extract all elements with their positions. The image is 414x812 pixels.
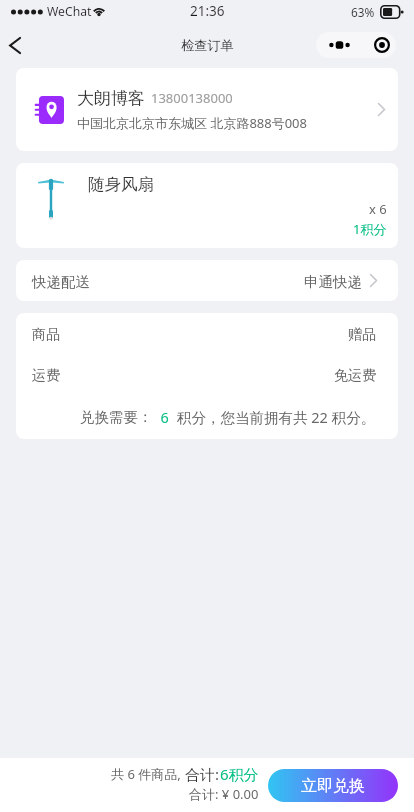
staticText: 兑换需要：: [80, 408, 153, 426]
button[interactable]: Back: [0, 25, 30, 65]
staticText: 快递配送: [32, 273, 90, 291]
staticText: 21:36: [190, 2, 225, 20]
staticText: 运费: [32, 367, 60, 385]
staticText: 商品: [32, 326, 60, 344]
staticText: 中国北京北京市东城区 北京路888号008: [77, 114, 307, 132]
staticText: 6积分: [220, 764, 259, 784]
staticText: 共 6 件商品,: [111, 765, 185, 783]
button[interactable]: 随身风扇: [16, 163, 398, 248]
staticText: 大朗博客: [77, 88, 145, 109]
button[interactable]: 快递配送: [16, 260, 398, 301]
staticText: 检查订单: [181, 37, 234, 54]
staticText: 申通快递: [304, 273, 362, 291]
staticText: 随身风扇: [88, 174, 154, 195]
staticText: 积分，您当前拥有共 22 积分。: [177, 407, 376, 427]
staticText: 6: [153, 407, 177, 427]
staticText: 1积分: [353, 220, 387, 238]
staticText: x 6: [369, 200, 387, 218]
staticText: 免运费: [334, 367, 376, 385]
staticText: 63%: [351, 4, 375, 20]
staticText: 合计:: [185, 764, 220, 784]
staticText: 13800138000: [151, 89, 233, 107]
button[interactable]: 立即兑换: [268, 769, 398, 802]
button[interactable]: 大朗博客: [16, 68, 398, 151]
button[interactable]: More options: [316, 32, 396, 58]
staticText: 立即兑换: [301, 776, 365, 796]
staticText: 赠品: [348, 326, 376, 344]
staticText: 合计: ¥ 0.00: [189, 785, 259, 803]
staticText: WeChat: [47, 3, 92, 20]
